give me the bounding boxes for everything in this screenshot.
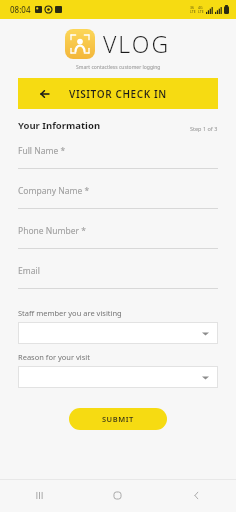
button[interactable] — [18, 322, 218, 344]
button[interactable] — [18, 366, 218, 388]
button[interactable]: Phone Number * — [18, 225, 218, 265]
button[interactable]: Company Name * — [18, 185, 218, 225]
staticText: Reason for your visit — [18, 352, 91, 362]
staticText: VLOG — [103, 28, 171, 59]
staticText: Staff member you are visiting — [18, 308, 122, 318]
staticText: SUBMIT — [102, 414, 134, 424]
staticText: Company Name * — [18, 185, 90, 197]
staticText: 36 LTE — [190, 5, 196, 14]
staticText: Full Name * — [18, 145, 66, 157]
button[interactable]: VISITOR CHECK IN — [18, 78, 218, 109]
staticText: Phone Number * — [18, 225, 86, 237]
button[interactable]: Home — [78, 479, 157, 512]
button[interactable]: Back — [157, 479, 236, 512]
staticText: Step 1 of 3 — [190, 125, 218, 132]
button[interactable]: Recents — [0, 479, 78, 512]
staticText: 08:04 — [10, 4, 31, 15]
staticText: VISITOR CHECK IN — [69, 87, 167, 101]
button[interactable]: Back — [34, 83, 56, 105]
staticText: 4G LTE — [198, 5, 204, 14]
button[interactable]: Full Name * — [18, 145, 218, 185]
staticText: Your Information — [18, 119, 101, 132]
staticText: Email — [18, 265, 40, 277]
button[interactable]: Email — [18, 265, 218, 305]
button[interactable]: SUBMIT — [69, 408, 167, 430]
staticText: Smart contactless customer logging — [76, 64, 161, 71]
